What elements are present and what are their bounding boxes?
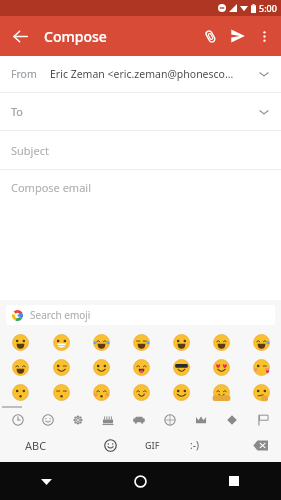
button[interactable]: Home xyxy=(93,462,187,500)
button[interactable]: Send xyxy=(224,22,252,50)
staticText: Compose xyxy=(44,27,107,46)
button[interactable]: Emoji xyxy=(0,355,41,380)
staticText: Eric Zeman <eric.zeman@phonesco… xyxy=(50,67,234,81)
button[interactable]: Attach file xyxy=(196,22,224,50)
button[interactable]: Emoji xyxy=(0,380,41,405)
button[interactable]: Emoji xyxy=(201,355,241,380)
button[interactable]: Emoji xyxy=(0,330,41,355)
button[interactable]: Nature xyxy=(63,409,93,431)
button[interactable]: Activities xyxy=(154,409,185,431)
button[interactable]: :-) xyxy=(179,431,209,459)
button[interactable]: GIF xyxy=(137,431,167,459)
button[interactable]: Travel xyxy=(123,409,154,431)
button[interactable]: Hide keyboard xyxy=(0,462,93,500)
button[interactable]: Emoji xyxy=(241,355,281,380)
button[interactable]: Emoji xyxy=(41,330,81,355)
button[interactable]: Smileys xyxy=(33,409,63,431)
button[interactable]: Emoji xyxy=(41,355,81,380)
staticText: From xyxy=(11,67,37,81)
button[interactable]: Objects xyxy=(185,409,216,431)
button[interactable]: Search emoji xyxy=(6,305,275,325)
button[interactable]: Emoji xyxy=(161,355,201,380)
staticText: Compose email xyxy=(11,180,91,195)
button[interactable]: Emoji xyxy=(81,330,121,355)
button[interactable]: Flags xyxy=(247,409,278,431)
staticText: GIF xyxy=(145,439,160,451)
staticText: ABC xyxy=(25,438,47,453)
button[interactable]: Emoji xyxy=(121,380,161,405)
staticText: :-) xyxy=(190,438,199,452)
button[interactable]: Recent xyxy=(3,409,33,431)
button[interactable]: To xyxy=(0,93,281,130)
button[interactable]: Subject xyxy=(0,131,281,169)
button[interactable]: Emoji xyxy=(81,380,121,405)
button[interactable]: Food xyxy=(93,409,123,431)
button[interactable]: Delete xyxy=(239,431,281,459)
staticText: Search emoji xyxy=(30,308,91,322)
button[interactable]: Compose email xyxy=(0,170,281,204)
staticText: 5:00 xyxy=(259,2,277,14)
staticText: Subject xyxy=(11,143,49,158)
button[interactable]: Emoji xyxy=(161,380,201,405)
button[interactable]: Emoji keyboard xyxy=(95,431,125,459)
button[interactable]: Emoji xyxy=(121,355,161,380)
button[interactable]: Emoji xyxy=(241,380,281,405)
button[interactable]: Emoji xyxy=(81,355,121,380)
button[interactable]: More options xyxy=(252,24,276,48)
staticText: To xyxy=(11,104,24,119)
button[interactable]: Emoji xyxy=(121,330,161,355)
button[interactable]: Recent apps xyxy=(187,462,281,500)
button[interactable]: Back xyxy=(5,21,35,51)
button[interactable]: Emoji xyxy=(201,330,241,355)
button[interactable]: Emoji xyxy=(41,380,81,405)
button[interactable]: Emoji xyxy=(161,330,201,355)
button[interactable]: Symbols xyxy=(216,409,247,431)
button[interactable]: Emoji xyxy=(201,380,241,405)
button[interactable]: ABC xyxy=(0,431,72,459)
button[interactable]: From xyxy=(0,56,281,92)
button[interactable]: Emoji xyxy=(241,330,281,355)
